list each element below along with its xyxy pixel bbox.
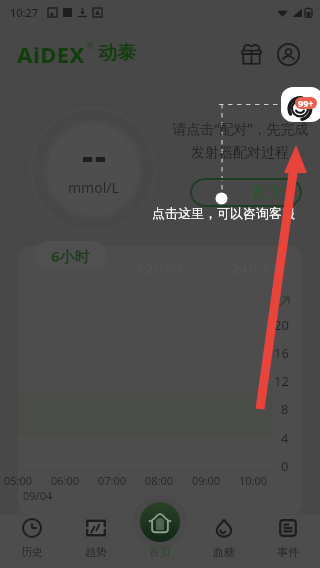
staticText: 血糖 [213, 545, 235, 559]
staticText: 16 [274, 344, 289, 360]
staticText: 20 [274, 316, 289, 332]
staticText: AiDEX [17, 39, 86, 69]
staticText: 24小时 [231, 258, 279, 278]
staticText: 动泰 [98, 41, 136, 65]
button[interactable]: 配对 [190, 178, 302, 207]
button[interactable]: 6小时 [34, 241, 107, 270]
button[interactable]: Account [274, 40, 303, 69]
button[interactable]: Expand chart [275, 293, 292, 310]
button[interactable]: 趋势 [70, 518, 122, 559]
staticText: 06:00 [51, 473, 80, 488]
staticText: 10:00 [239, 473, 268, 488]
staticText: 点击这里，可以咨询客服 [152, 205, 295, 221]
button[interactable] [129, 491, 191, 553]
staticText: 09/04 [23, 488, 53, 503]
staticText: 05:00 [4, 473, 33, 488]
staticText: 09:00 [192, 473, 221, 488]
staticText: 10:27 [10, 5, 39, 20]
staticText: 趋势 [85, 545, 107, 559]
staticText: 07:00 [98, 473, 127, 488]
button[interactable]: Customer service [281, 87, 320, 122]
button[interactable]: 事件 [262, 518, 314, 559]
staticText: 99+ [298, 97, 314, 109]
staticText: 配对 [253, 182, 287, 203]
button[interactable]: 历史 [6, 518, 58, 559]
staticText: 6小时 [51, 246, 90, 266]
staticText: 请点击“配对”，先完成 [172, 119, 309, 138]
staticText: 0 [281, 457, 289, 473]
staticText: 12 [274, 372, 289, 388]
staticText: ® [87, 40, 94, 51]
staticText: 历史 [21, 545, 43, 559]
staticText: 事件 [277, 545, 299, 559]
staticText: 08:00 [145, 473, 174, 488]
staticText: 8 [281, 400, 289, 416]
button[interactable]: 血糖 [198, 518, 250, 559]
staticText: 首页 [149, 545, 171, 559]
staticText: mmol/L [68, 178, 119, 197]
button[interactable]: 24小时 [223, 255, 287, 281]
staticText: 发射器配对过程 [191, 144, 289, 162]
staticText: 4 [281, 429, 289, 445]
button[interactable]: Gifts [237, 40, 266, 69]
